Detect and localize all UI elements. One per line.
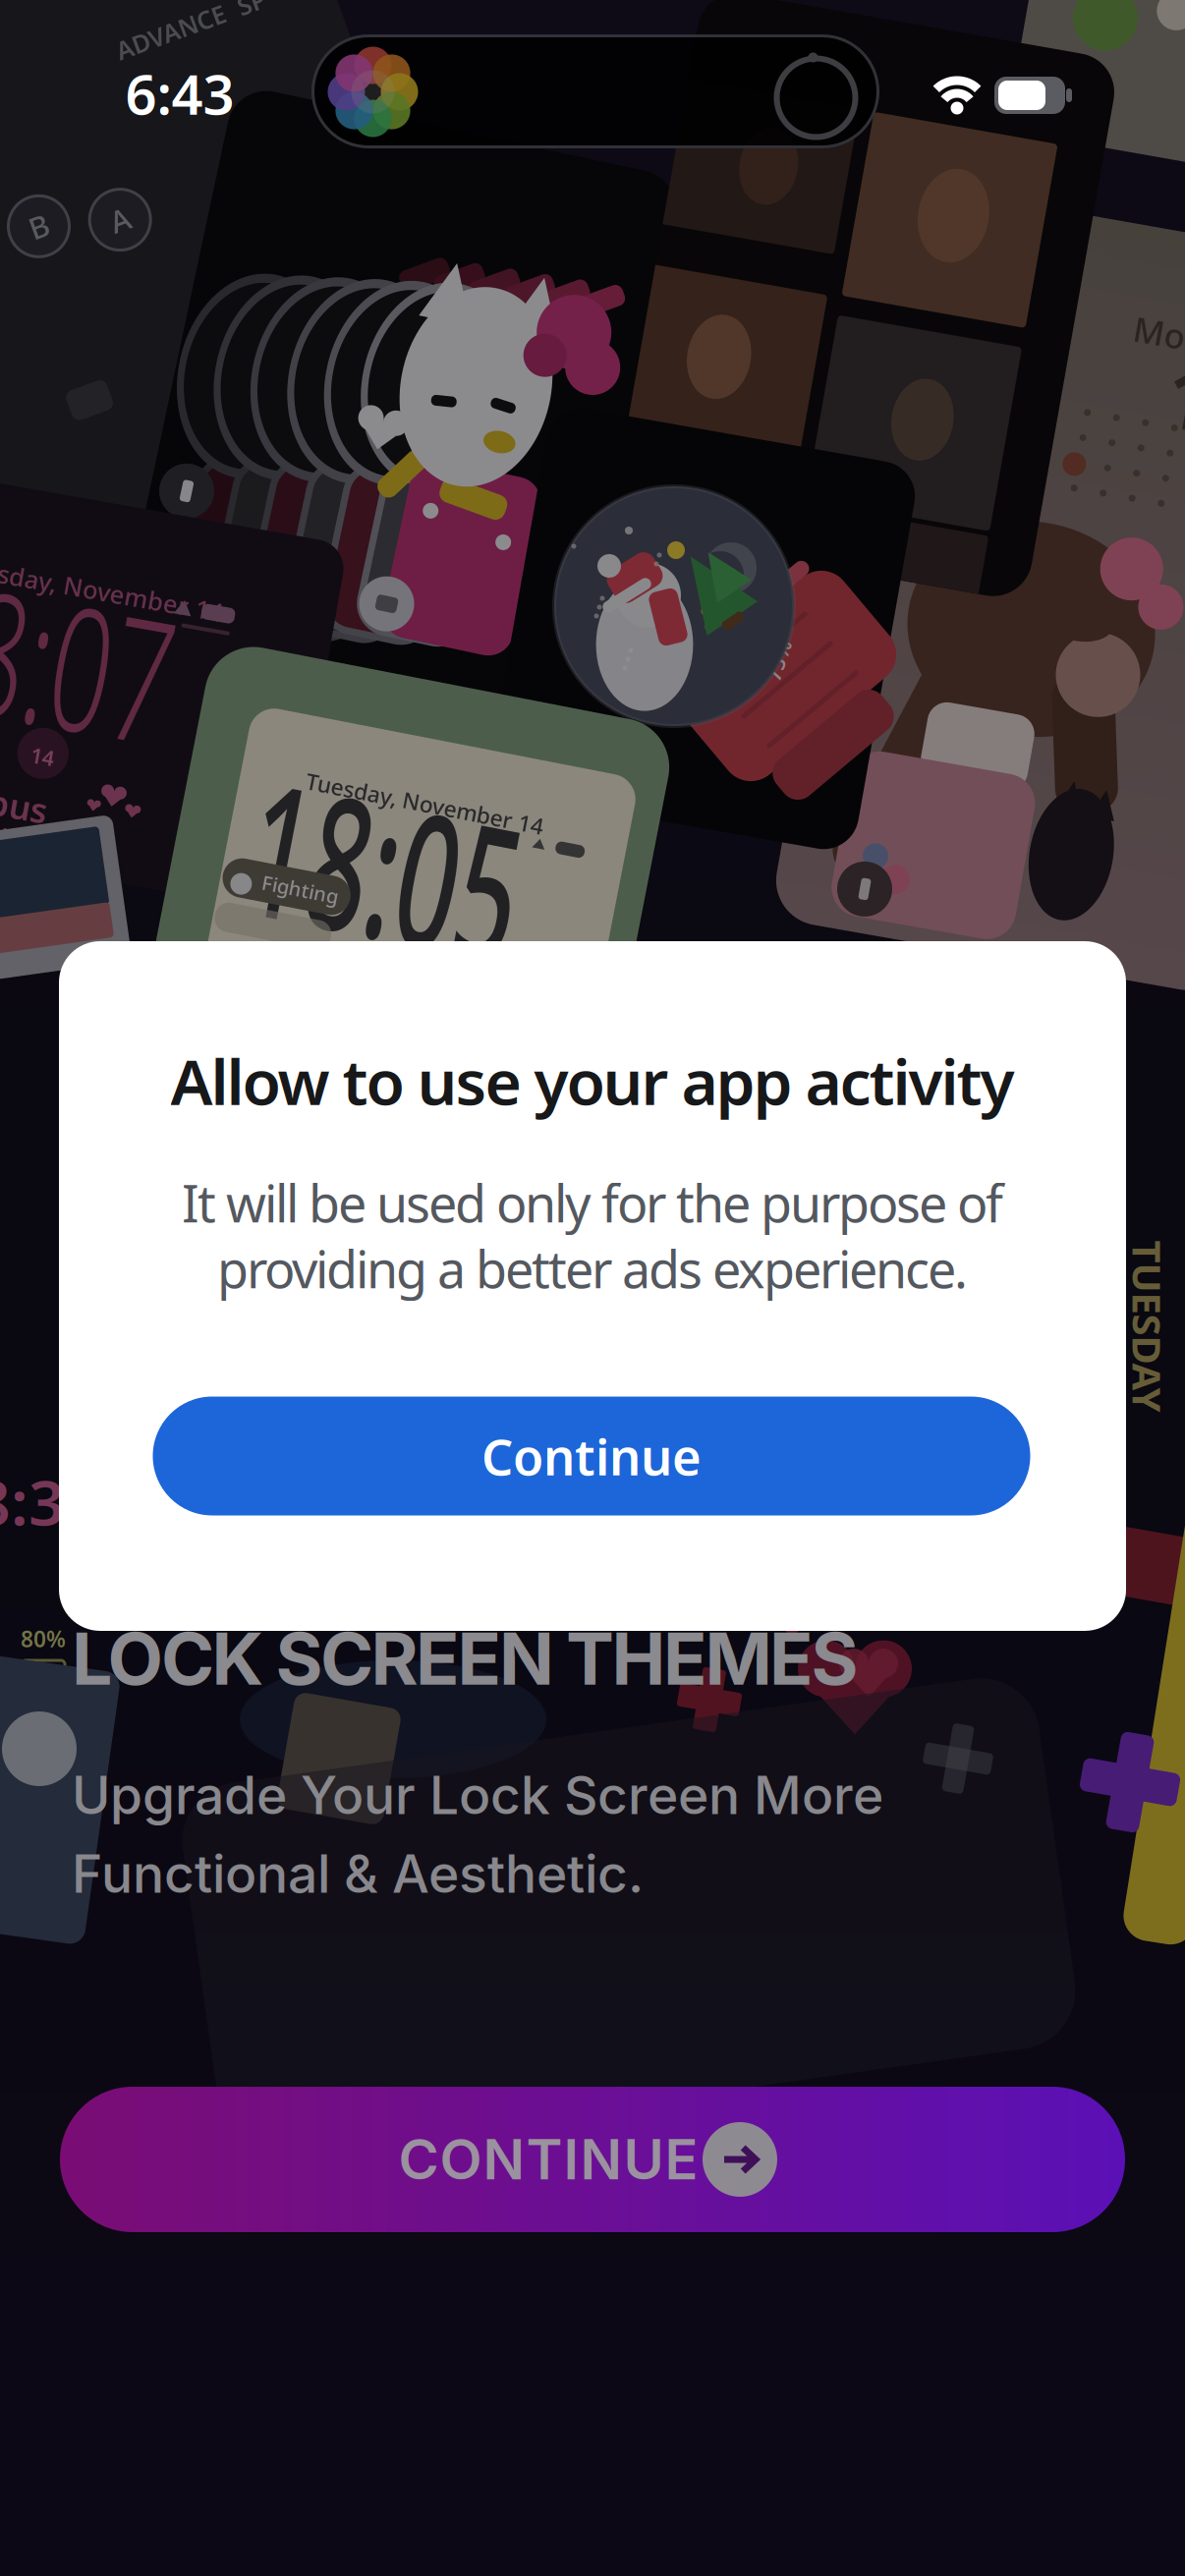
staticText: et .. (8, 828, 61, 868)
staticText: Functional & Aesthetic. (72, 1842, 644, 1905)
staticText: Upgrade Your Lock Screen More (72, 1763, 883, 1827)
staticText: B (30, 187, 50, 227)
staticText: Allow to use your app activity (170, 1039, 1015, 1122)
staticText: Mo (1087, 297, 1139, 342)
staticText: 18:05 (128, 749, 599, 992)
staticText: 75% (757, 646, 799, 674)
staticText: 1 (1130, 323, 1179, 434)
staticText: providing a better ads experience. (217, 1234, 968, 1302)
staticText: CONTINUE (398, 2126, 698, 2193)
staticText: Fighting (245, 895, 323, 921)
button[interactable]: CONTINUE (60, 2087, 1125, 2232)
staticText: Tuesday, November 14 (0, 573, 207, 606)
staticText: 80% (21, 1624, 66, 1653)
staticText: 6:43 (125, 57, 234, 130)
staticText: pus (9, 793, 69, 838)
staticText: TUESDAY (1062, 1300, 1185, 1352)
staticText: A (109, 209, 129, 249)
staticText: 8:07 (0, 553, 232, 779)
staticText: ADVANCE SP (173, 53, 332, 86)
staticText: It will be used only for the purpose of (182, 1169, 1003, 1237)
button[interactable]: Continue (153, 1397, 1030, 1515)
staticText: 14 (43, 748, 67, 776)
staticText: Continue (481, 1423, 702, 1489)
staticText: 8:3 (0, 1459, 65, 1543)
staticText: Tuesday, November 14 (269, 785, 511, 814)
staticText: LOCK SCREEN THEMES (72, 1615, 858, 1702)
